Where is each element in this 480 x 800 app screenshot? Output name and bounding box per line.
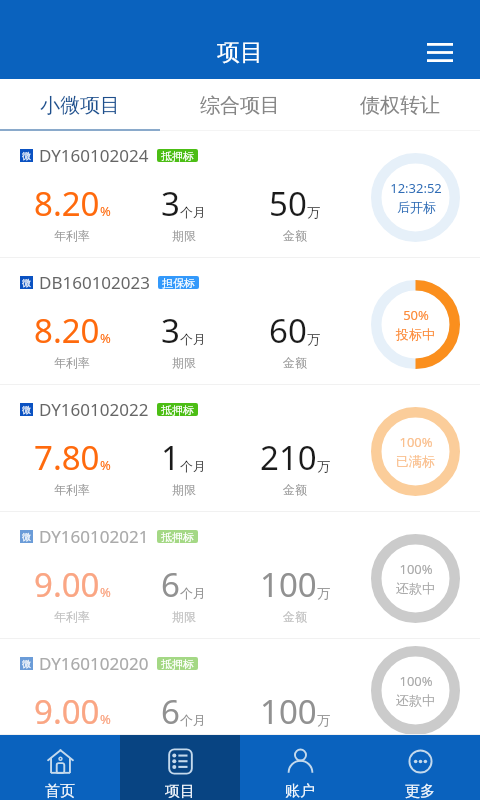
staticText: 账户 [285,782,315,800]
staticText: 项目 [165,782,195,800]
staticText: 12:32:52 [390,179,442,197]
staticText: 金额 [283,355,307,370]
staticText: 抵押标 [161,403,194,416]
staticText: 1 [161,435,180,480]
staticText: 8.20 [34,308,100,353]
staticText: % [100,583,111,601]
staticText: 担保标 [162,276,195,289]
staticText: 年利率 [54,609,90,624]
staticText: DY160102020 [39,652,149,675]
staticText: 抵押标 [161,657,194,670]
staticText: 6 [161,562,180,607]
staticText: DY160102022 [39,398,149,421]
staticText: 9.00 [34,562,100,607]
staticText: 100% [399,433,433,451]
staticText: 期限 [172,228,196,243]
staticText: 个月 [180,712,206,728]
staticText: 9.00 [34,689,100,734]
button[interactable]: 综合项目 [160,79,320,131]
staticText: 后开标 [397,199,436,215]
button[interactable]: 微 [0,131,480,258]
staticText: 3 [161,308,180,353]
button[interactable]: 微 [0,258,480,385]
staticText: 首页 [45,782,75,800]
staticText: % [100,710,111,728]
staticText: 7.80 [34,435,100,480]
staticText: DY160102021 [39,525,149,548]
button[interactable]: 微 [0,639,480,735]
button[interactable]: 微 [0,385,480,512]
staticText: 8.20 [34,181,100,226]
staticText: 债权转让 [360,93,440,118]
staticText: 金额 [283,482,307,497]
staticText: 综合项目 [200,93,280,118]
staticText: 个月 [180,331,206,347]
staticText: 210 [260,435,317,480]
staticText: DY160102024 [39,144,149,167]
staticText: 100% [399,672,433,690]
staticText: DB160102023 [39,271,150,294]
button[interactable]: 账户 [240,735,360,800]
staticText: 金额 [283,228,307,243]
staticText: 年利率 [54,482,90,497]
staticText: 期限 [172,355,196,370]
staticText: 万 [317,585,330,601]
staticText: 金额 [283,609,307,624]
staticText: 万 [317,458,330,474]
staticText: 微 [22,404,31,415]
staticText: 已满标 [396,453,435,469]
staticText: 50 [269,181,307,226]
staticText: 投标中 [396,326,435,342]
button[interactable]: 更多 [360,735,480,800]
staticText: 60 [269,308,307,353]
staticText: 抵押标 [161,149,194,162]
staticText: 微 [22,277,31,288]
staticText: 微 [22,531,31,542]
staticText: 更多 [405,782,435,800]
staticText: 100 [260,562,317,607]
staticText: 万 [307,204,320,220]
button[interactable]: 债权转让 [320,79,480,131]
staticText: 6 [161,689,180,734]
staticText: 个月 [180,204,206,220]
staticText: 还款中 [396,580,435,596]
staticText: 万 [317,712,330,728]
button[interactable]: 首页 [0,735,120,800]
staticText: 小微项目 [40,93,120,118]
button[interactable]: 项目 [120,735,240,800]
staticText: % [100,202,111,220]
staticText: 3 [161,181,180,226]
staticText: 期限 [172,609,196,624]
staticText: 100 [260,689,317,734]
button[interactable]: 微 [0,512,480,639]
staticText: 个月 [180,585,206,601]
staticText: 50% [403,306,429,324]
staticText: 还款中 [396,692,435,708]
staticText: 100% [399,560,433,578]
staticText: 个月 [180,458,206,474]
staticText: 年利率 [54,355,90,370]
staticText: 项目 [217,38,263,67]
staticText: 年利率 [54,228,90,243]
button[interactable]: Menu [418,30,462,74]
staticText: 微 [22,658,31,669]
staticText: 期限 [172,482,196,497]
staticText: 万 [307,331,320,347]
staticText: % [100,329,111,347]
staticText: 抵押标 [161,530,194,543]
staticText: 微 [22,150,31,161]
button[interactable]: 小微项目 [0,79,160,131]
staticText: % [100,456,111,474]
